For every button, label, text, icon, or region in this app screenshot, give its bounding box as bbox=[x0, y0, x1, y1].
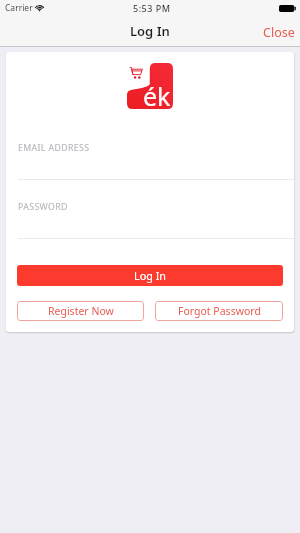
staticText: Forgot Password bbox=[178, 304, 261, 318]
staticText: Close bbox=[263, 24, 295, 41]
button[interactable]: Close bbox=[255, 19, 300, 46]
button[interactable]: PASSWORD bbox=[6, 180, 294, 239]
button[interactable]: Log In bbox=[17, 265, 283, 286]
button[interactable]: Forgot Password bbox=[155, 301, 283, 321]
staticText: 5:53 PM bbox=[133, 2, 171, 14]
staticText: ék bbox=[143, 79, 171, 113]
staticText: PASSWORD bbox=[18, 201, 68, 213]
staticText: Carrier bbox=[5, 2, 33, 14]
button[interactable]: Register Now bbox=[17, 301, 144, 321]
staticText: Log In bbox=[130, 22, 170, 40]
staticText: EMAIL ADDRESS bbox=[18, 142, 90, 154]
staticText: Log In bbox=[134, 268, 166, 283]
button[interactable]: EMAIL ADDRESS bbox=[6, 120, 294, 180]
staticText: Register Now bbox=[48, 304, 114, 318]
